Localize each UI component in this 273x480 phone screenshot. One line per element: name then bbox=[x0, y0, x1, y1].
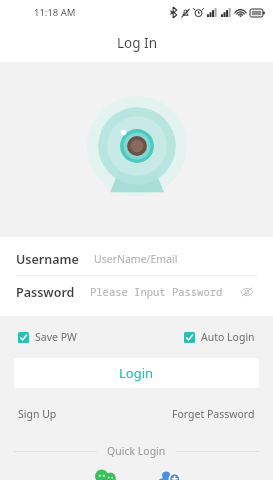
staticText: Forget Password bbox=[172, 407, 255, 421]
button[interactable]: Log in with WeChat bbox=[84, 474, 128, 480]
button[interactable]: Sign Up bbox=[18, 404, 57, 424]
button[interactable]: Login bbox=[14, 358, 259, 388]
staticText: 11:18 AM bbox=[34, 6, 76, 19]
button[interactable]: Save PW bbox=[18, 327, 77, 347]
button[interactable]: Forget Password bbox=[172, 404, 255, 424]
staticText: Sign Up bbox=[18, 407, 57, 421]
button[interactable]: Log in with account bbox=[146, 474, 190, 480]
staticText: Username bbox=[16, 251, 79, 268]
button[interactable]: Username bbox=[16, 243, 257, 275]
staticText: Quick Login bbox=[107, 444, 166, 458]
staticText: UserName/Email bbox=[94, 252, 178, 266]
staticText: Please Input Password bbox=[90, 285, 237, 299]
button[interactable]: Auto Login bbox=[184, 327, 255, 347]
staticText: Login bbox=[119, 364, 154, 382]
button[interactable]: Show password bbox=[237, 282, 257, 302]
staticText: Save PW bbox=[35, 330, 77, 344]
staticText: Password bbox=[16, 284, 75, 301]
staticText: Log In bbox=[117, 34, 157, 52]
staticText: Auto Login bbox=[201, 330, 255, 344]
button[interactable]: Password bbox=[16, 276, 257, 308]
